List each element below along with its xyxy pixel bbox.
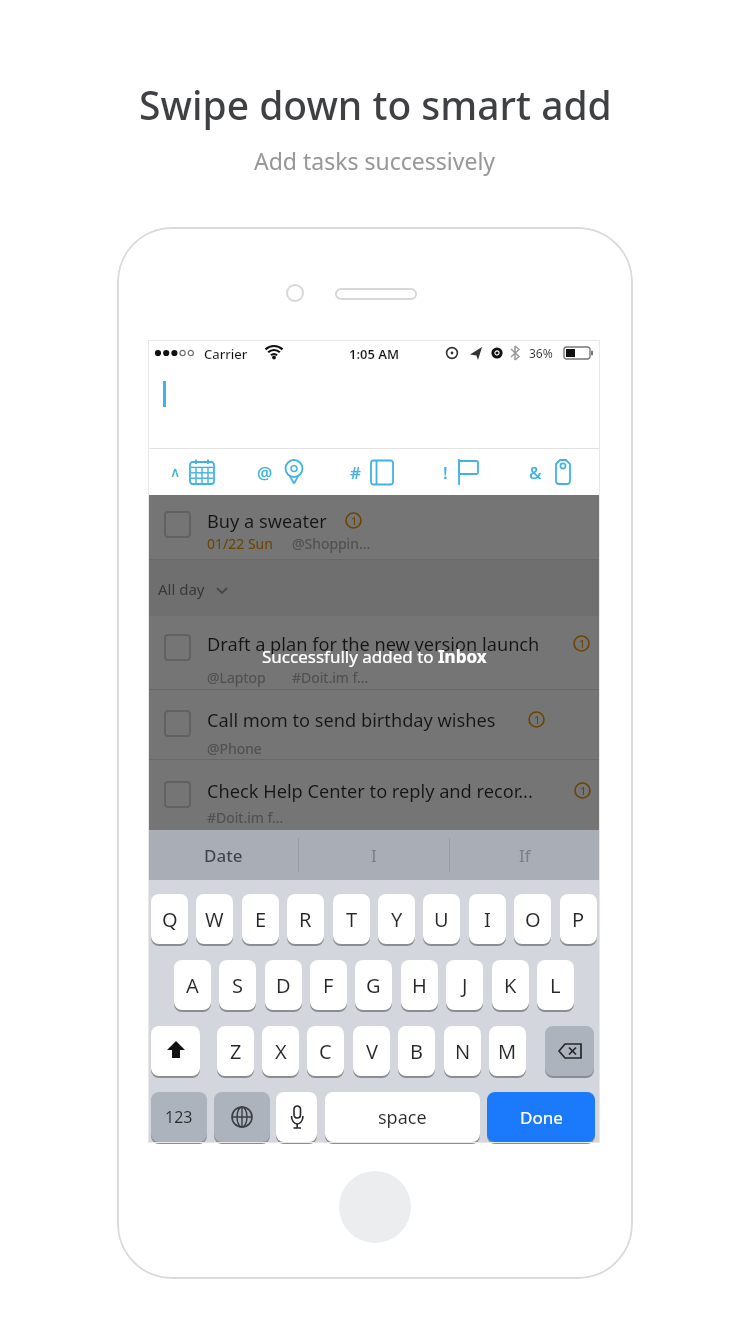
staticText: Draft a plan for the new version launch <box>207 632 540 657</box>
staticText: P <box>572 906 585 933</box>
button[interactable]: L <box>537 960 574 1010</box>
button[interactable]: J <box>446 960 483 1010</box>
staticText: X <box>275 1038 287 1065</box>
button[interactable]: # <box>335 448 411 495</box>
staticText: O <box>525 906 541 933</box>
staticText: T <box>346 906 358 933</box>
staticText: 01/22 Sun <box>207 534 273 553</box>
staticText: Add tasks successively <box>254 145 496 176</box>
button[interactable] <box>545 1026 594 1076</box>
staticText: V <box>366 1038 378 1065</box>
staticText: E <box>255 906 267 933</box>
staticText: 1 <box>534 712 541 727</box>
staticText: All day <box>158 579 205 599</box>
button[interactable]: Done <box>487 1092 595 1142</box>
button[interactable]: R <box>287 894 324 944</box>
button[interactable]: Date <box>148 830 298 880</box>
staticText: I <box>371 844 377 867</box>
button[interactable]: If <box>450 830 600 880</box>
staticText: Call mom to send birthday wishes <box>207 708 496 733</box>
button[interactable] <box>151 1026 200 1076</box>
staticText: Successfully added to Inbox <box>262 645 487 668</box>
button[interactable]: A <box>174 960 211 1010</box>
button[interactable]: ∧ <box>155 448 231 495</box>
button[interactable]: F <box>310 960 347 1010</box>
button[interactable]: Call mom to send birthday wishes <box>148 690 600 760</box>
staticText: # <box>350 461 361 484</box>
staticText: @Laptop <box>207 668 266 687</box>
staticText: K <box>504 972 517 999</box>
staticText: Date <box>204 844 243 867</box>
button[interactable] <box>276 1092 317 1142</box>
staticText: & <box>529 461 542 484</box>
staticText: @Shoppin... <box>292 534 371 553</box>
button[interactable]: O <box>514 894 551 944</box>
staticText: ∧ <box>170 464 181 480</box>
button[interactable]: Q <box>151 894 188 944</box>
staticText: Y <box>391 906 403 933</box>
staticText: Swipe down to smart add <box>139 78 612 131</box>
staticText: B <box>410 1038 423 1065</box>
staticText: D <box>276 972 291 999</box>
button[interactable]: P <box>560 894 597 944</box>
button[interactable]: T <box>333 894 370 944</box>
staticText: J <box>462 972 468 999</box>
staticText: Check Help Center to reply and recor... <box>207 779 533 804</box>
button[interactable]: Check Help Center to reply and recor... <box>148 760 600 831</box>
button[interactable]: Buy a sweater <box>148 495 600 560</box>
button[interactable] <box>339 1171 411 1243</box>
button[interactable]: Y <box>378 894 415 944</box>
staticText: M <box>498 1038 517 1065</box>
button[interactable]: C <box>307 1026 344 1076</box>
button[interactable]: @ <box>245 448 321 495</box>
staticText: 1 <box>351 513 358 528</box>
button[interactable]: V <box>353 1026 390 1076</box>
staticText: L <box>550 972 561 999</box>
button[interactable]: ! <box>425 448 501 495</box>
staticText: Z <box>230 1038 242 1065</box>
staticText: @ <box>257 461 273 484</box>
button[interactable]: space <box>325 1092 480 1142</box>
button[interactable]: & <box>515 448 591 495</box>
button[interactable]: H <box>401 960 438 1010</box>
staticText: U <box>434 906 449 933</box>
button[interactable]: K <box>492 960 529 1010</box>
button[interactable]: W <box>196 894 233 944</box>
staticText: W <box>205 906 224 933</box>
staticText: 123 <box>165 1106 193 1128</box>
staticText: S <box>232 972 243 999</box>
staticText: N <box>455 1038 471 1065</box>
staticText: #Doit.im f... <box>207 808 284 827</box>
staticText: #Doit.im f... <box>292 668 369 687</box>
staticText: H <box>412 972 427 999</box>
button[interactable]: I <box>469 894 506 944</box>
staticText: I <box>484 906 491 933</box>
staticText: Q <box>162 906 178 933</box>
button[interactable] <box>214 1092 270 1142</box>
button[interactable]: E <box>242 894 279 944</box>
button[interactable]: G <box>355 960 392 1010</box>
staticText: Done <box>520 1106 563 1129</box>
staticText: 1 <box>580 783 587 798</box>
staticText: G <box>366 972 381 999</box>
staticText: If <box>519 844 531 867</box>
button[interactable]: X <box>262 1026 299 1076</box>
button[interactable]: Z <box>217 1026 254 1076</box>
button[interactable]: N <box>444 1026 481 1076</box>
staticText: 1:05 AM <box>349 345 400 363</box>
button[interactable]: 123 <box>151 1092 207 1142</box>
staticText: 1 <box>579 636 586 651</box>
staticText: Carrier <box>204 345 248 363</box>
button[interactable]: U <box>423 894 460 944</box>
button[interactable]: S <box>219 960 256 1010</box>
staticText: space <box>378 1105 427 1130</box>
staticText: C <box>319 1038 332 1065</box>
staticText: ! <box>443 461 448 484</box>
button[interactable]: Draft a plan for the new version launch <box>148 616 600 690</box>
button[interactable]: M <box>489 1026 526 1076</box>
staticText: 36% <box>529 345 553 361</box>
button[interactable]: D <box>265 960 302 1010</box>
staticText: A <box>186 972 199 999</box>
button[interactable]: B <box>398 1026 435 1076</box>
